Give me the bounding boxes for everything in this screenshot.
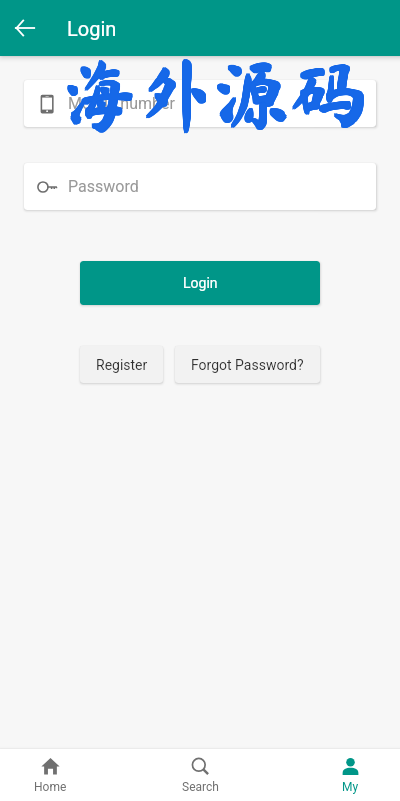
staticText: 海外源码: [63, 56, 367, 132]
button[interactable]: Password: [24, 163, 376, 210]
staticText: 海外源码: [61, 57, 365, 133]
staticText: 海外源码: [62, 57, 366, 133]
staticText: Login: [67, 17, 117, 40]
staticText: 海外源码: [63, 55, 367, 131]
staticText: 海外源码: [63, 55, 367, 131]
staticText: 海外源码: [62, 56, 366, 132]
staticText: My: [342, 780, 359, 794]
staticText: 海外源码: [61, 57, 365, 133]
button[interactable]: Forgot Password?: [175, 346, 320, 383]
button[interactable]: My: [300, 749, 400, 801]
button[interactable]: Search: [150, 749, 250, 801]
button[interactable]: Home: [0, 749, 100, 801]
staticText: 海外源码: [63, 57, 367, 133]
staticText: 海外源码: [62, 55, 366, 131]
staticText: 海外源码: [63, 57, 367, 133]
staticText: 海外源码: [61, 56, 365, 132]
staticText: 海外源码: [61, 55, 365, 131]
staticText: Forgot Password?: [191, 357, 304, 373]
staticText: Password: [68, 177, 139, 196]
staticText: Home: [34, 780, 67, 794]
button[interactable]: Register: [80, 346, 163, 383]
staticText: Login: [183, 275, 218, 291]
staticText: Mobile number: [68, 94, 175, 113]
staticText: 海外源码: [61, 55, 365, 131]
staticText: Register: [96, 357, 148, 373]
button[interactable]: Login: [80, 261, 320, 305]
button[interactable]: Mobile number: [24, 80, 376, 127]
button[interactable]: Back: [0, 0, 50, 56]
staticText: Search: [182, 780, 219, 794]
